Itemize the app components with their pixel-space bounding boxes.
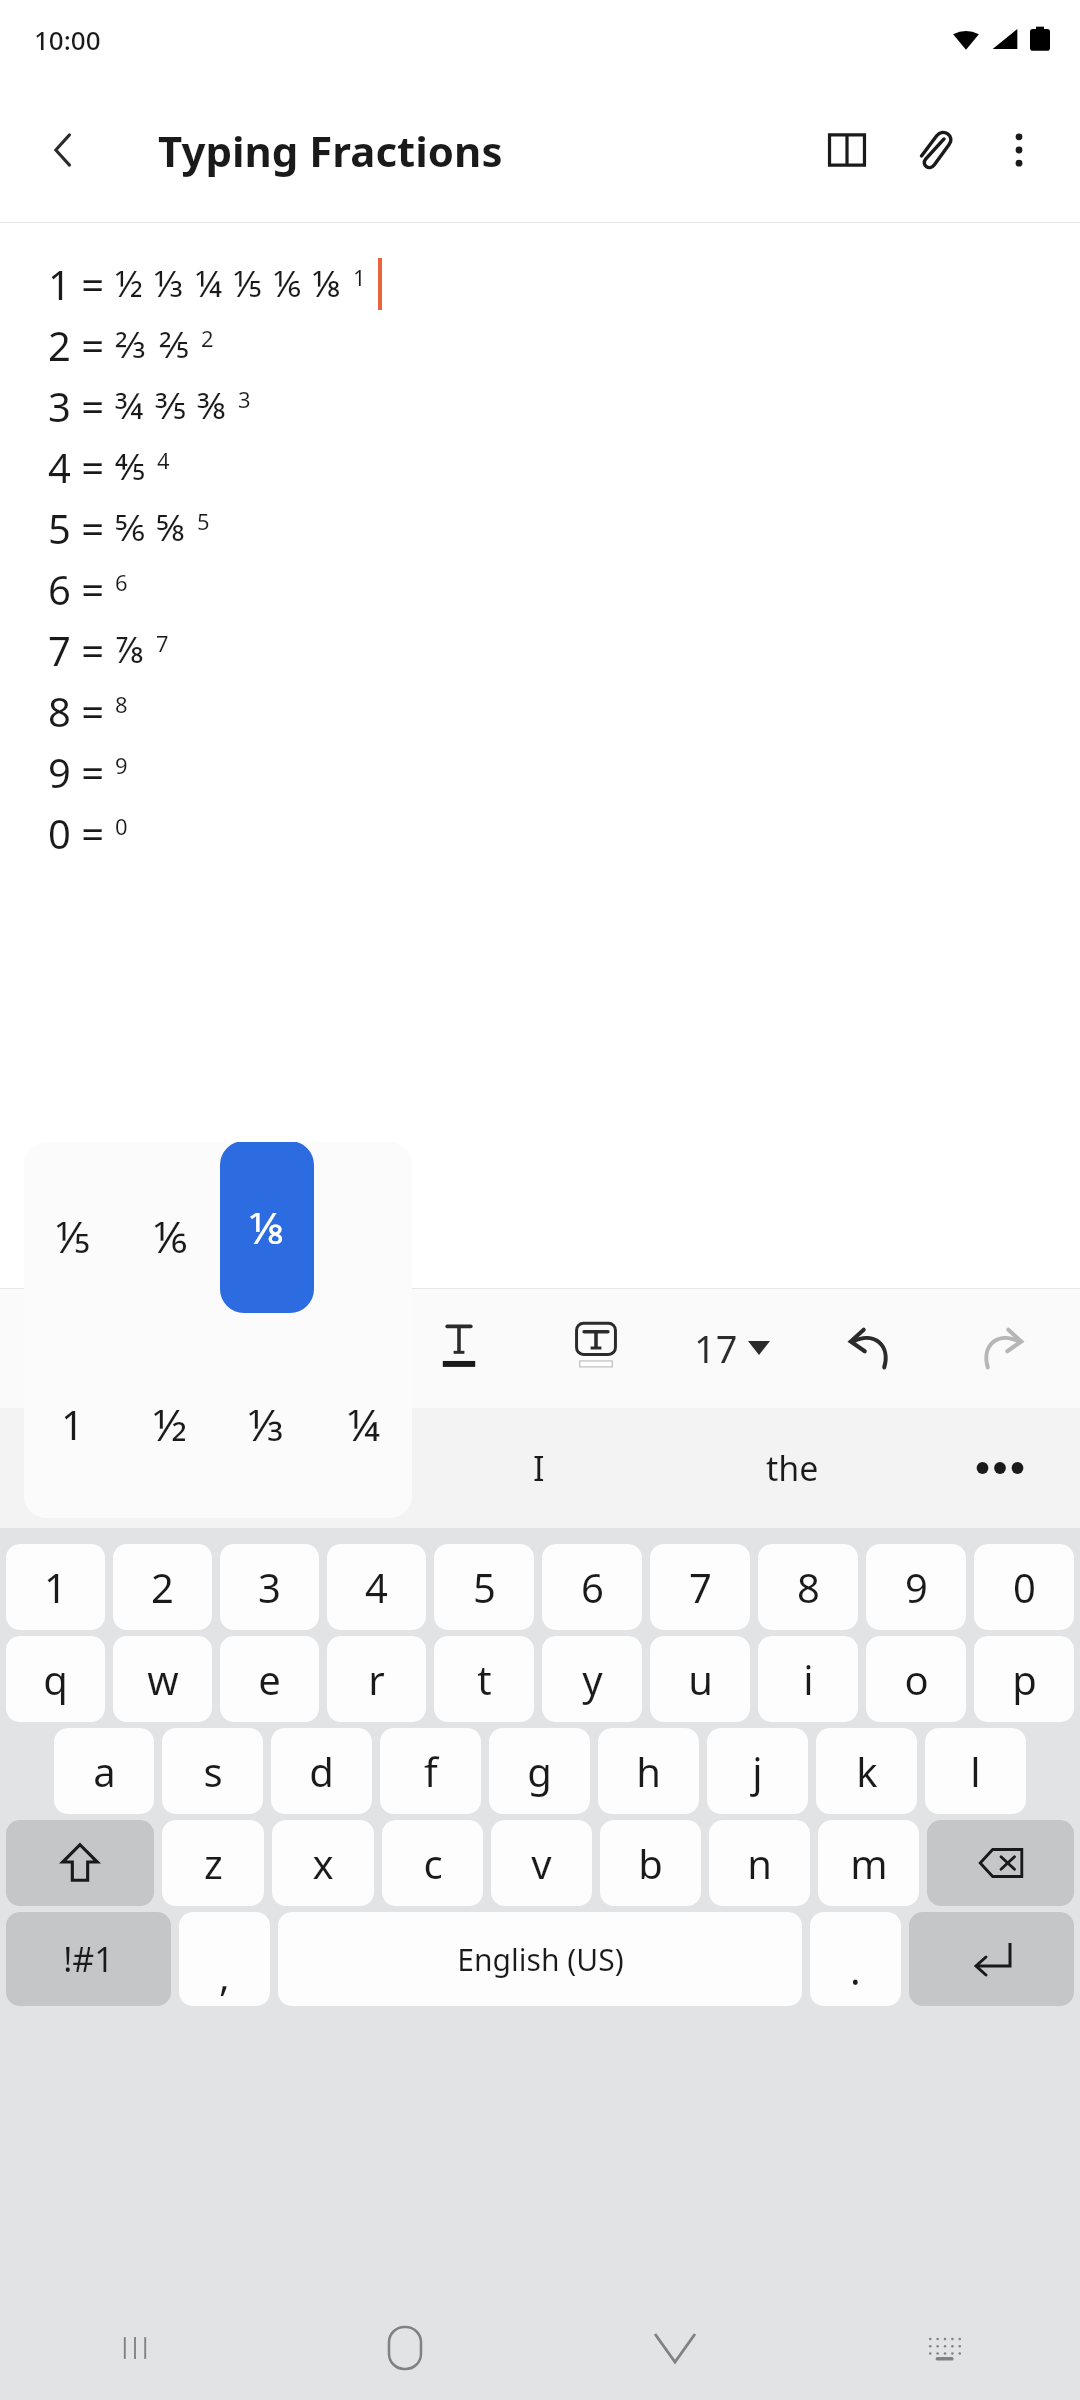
button[interactable]: ⅙ xyxy=(121,1142,218,1330)
button[interactable]: Home xyxy=(270,2296,540,2400)
staticText: 0 xyxy=(115,811,128,841)
button[interactable]: 6 xyxy=(542,1544,642,1630)
button[interactable]: Enter xyxy=(909,1912,1074,2006)
button[interactable]: w xyxy=(113,1636,212,1722)
staticText: 9 xyxy=(905,1560,928,1614)
button[interactable]: 4 xyxy=(327,1544,426,1630)
button[interactable]: n xyxy=(709,1820,810,1906)
button[interactable]: t xyxy=(434,1636,534,1722)
staticText: q xyxy=(43,1652,68,1706)
button[interactable]: More suggestions xyxy=(919,1408,1080,1528)
button[interactable]: ⅛ xyxy=(220,1142,314,1313)
staticText: k xyxy=(856,1744,878,1798)
button[interactable]: I xyxy=(412,1408,666,1528)
button[interactable]: Backspace xyxy=(927,1820,1074,1906)
button[interactable]: s xyxy=(162,1728,263,1814)
staticText: o xyxy=(904,1652,929,1706)
staticText: 4 = xyxy=(48,440,115,494)
button[interactable]: b xyxy=(600,1820,701,1906)
button[interactable]: h xyxy=(598,1728,699,1814)
staticText: g xyxy=(527,1744,552,1798)
button[interactable]: Change keyboard xyxy=(810,2296,1080,2400)
button[interactable]: e xyxy=(220,1636,319,1722)
button[interactable]: !#1 xyxy=(6,1912,171,2006)
staticText: z xyxy=(204,1836,223,1890)
button[interactable]: 7 xyxy=(650,1544,750,1630)
button[interactable]: 9 xyxy=(866,1544,966,1630)
staticText: n xyxy=(747,1836,772,1890)
button[interactable]: j xyxy=(707,1728,808,1814)
staticText: I xyxy=(533,1445,545,1491)
button[interactable]: u xyxy=(650,1636,750,1722)
staticText: 7 = xyxy=(48,623,115,677)
button[interactable]: g xyxy=(489,1728,590,1814)
button[interactable]: 8 xyxy=(758,1544,858,1630)
button[interactable]: Font size 17 xyxy=(664,1288,800,1408)
staticText: 17 xyxy=(694,1322,738,1374)
button[interactable]: More options xyxy=(976,107,1062,193)
button[interactable]: Read mode xyxy=(804,107,890,193)
staticText: ¾ xyxy=(115,381,144,430)
button[interactable]: p xyxy=(974,1636,1074,1722)
button[interactable]: l xyxy=(925,1728,1026,1814)
staticText: 8 = xyxy=(48,684,115,738)
button[interactable]: Back xyxy=(24,111,102,189)
button[interactable]: r xyxy=(327,1636,426,1722)
staticText: 6 = xyxy=(48,562,115,616)
staticText: b xyxy=(638,1836,663,1890)
button[interactable]: v xyxy=(491,1820,592,1906)
button[interactable]: ⅓ xyxy=(218,1330,315,1518)
staticText: 10:00 xyxy=(34,22,101,57)
button[interactable]: Text color xyxy=(390,1288,527,1408)
button[interactable]: . xyxy=(810,1912,901,2006)
button[interactable]: English (US) xyxy=(278,1912,802,2006)
button[interactable]: y xyxy=(542,1636,642,1722)
button[interactable]: 1 xyxy=(24,1330,121,1518)
staticText: ⅘ xyxy=(115,442,146,491)
button[interactable]: d xyxy=(271,1728,372,1814)
button[interactable]: z xyxy=(162,1820,264,1906)
staticText: 5 = xyxy=(48,501,115,555)
button[interactable]: k xyxy=(816,1728,917,1814)
button[interactable]: ⅕ xyxy=(24,1142,121,1330)
staticText: 5 xyxy=(473,1560,496,1614)
button[interactable]: Redo xyxy=(936,1288,1072,1408)
button[interactable]: x xyxy=(272,1820,374,1906)
button[interactable]: Attach xyxy=(890,107,976,193)
staticText: c xyxy=(423,1836,443,1890)
button[interactable]: c xyxy=(382,1820,483,1906)
button[interactable]: 2 xyxy=(113,1544,212,1630)
button[interactable]: Recents xyxy=(0,2296,270,2400)
button[interactable]: i xyxy=(758,1636,858,1722)
staticText: e xyxy=(258,1652,281,1706)
button[interactable]: Highlight xyxy=(527,1288,664,1408)
staticText: 4 xyxy=(157,445,170,475)
button[interactable]: Hide keyboard xyxy=(540,2296,810,2400)
button[interactable]: ½ xyxy=(121,1330,218,1518)
staticText: ⅛ xyxy=(249,1197,286,1257)
button[interactable]: 1 xyxy=(6,1544,105,1630)
button[interactable]: q xyxy=(6,1636,105,1722)
staticText: ⅙ xyxy=(153,1206,187,1266)
staticText: ½ xyxy=(115,259,143,308)
button[interactable]: 3 xyxy=(220,1544,319,1630)
button[interactable]: o xyxy=(866,1636,966,1722)
staticText: 1 xyxy=(61,1397,84,1451)
staticText: i xyxy=(803,1652,814,1706)
button[interactable]: the xyxy=(666,1408,919,1528)
staticText: ⅓ xyxy=(248,1394,285,1454)
staticText: 7 xyxy=(689,1560,712,1614)
staticText: l xyxy=(970,1744,981,1798)
button[interactable]: , xyxy=(179,1912,270,2006)
button[interactable]: 0 xyxy=(974,1544,1074,1630)
button[interactable]: Shift xyxy=(6,1820,154,1906)
button[interactable]: f xyxy=(380,1728,481,1814)
button[interactable]: m xyxy=(818,1820,919,1906)
button[interactable]: Undo xyxy=(800,1288,936,1408)
button[interactable]: a xyxy=(54,1728,154,1814)
button[interactable]: ¼ xyxy=(315,1330,412,1518)
staticText: ⅕ xyxy=(55,1206,90,1266)
button[interactable]: 5 xyxy=(434,1544,534,1630)
staticText: ⅓ xyxy=(154,259,184,308)
staticText: h xyxy=(636,1744,661,1798)
